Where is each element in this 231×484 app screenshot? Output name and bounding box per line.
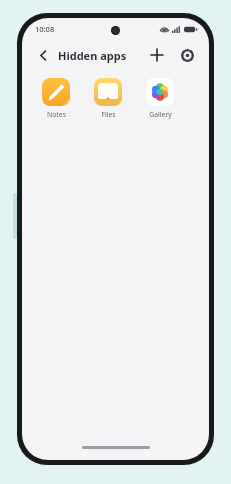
staticText: Notes — [47, 110, 66, 119]
button[interactable]: Back — [32, 44, 54, 66]
button[interactable]: Files — [88, 76, 128, 121]
staticText: Files — [101, 110, 116, 119]
button[interactable]: Gallery — [140, 76, 180, 121]
staticText: Hidden apps — [58, 48, 127, 63]
staticText: 10:08 — [35, 24, 55, 34]
staticText: Gallery — [149, 110, 172, 119]
button[interactable]: Settings — [175, 43, 199, 67]
button[interactable]: Notes — [36, 76, 76, 121]
button[interactable]: Add — [145, 43, 169, 67]
